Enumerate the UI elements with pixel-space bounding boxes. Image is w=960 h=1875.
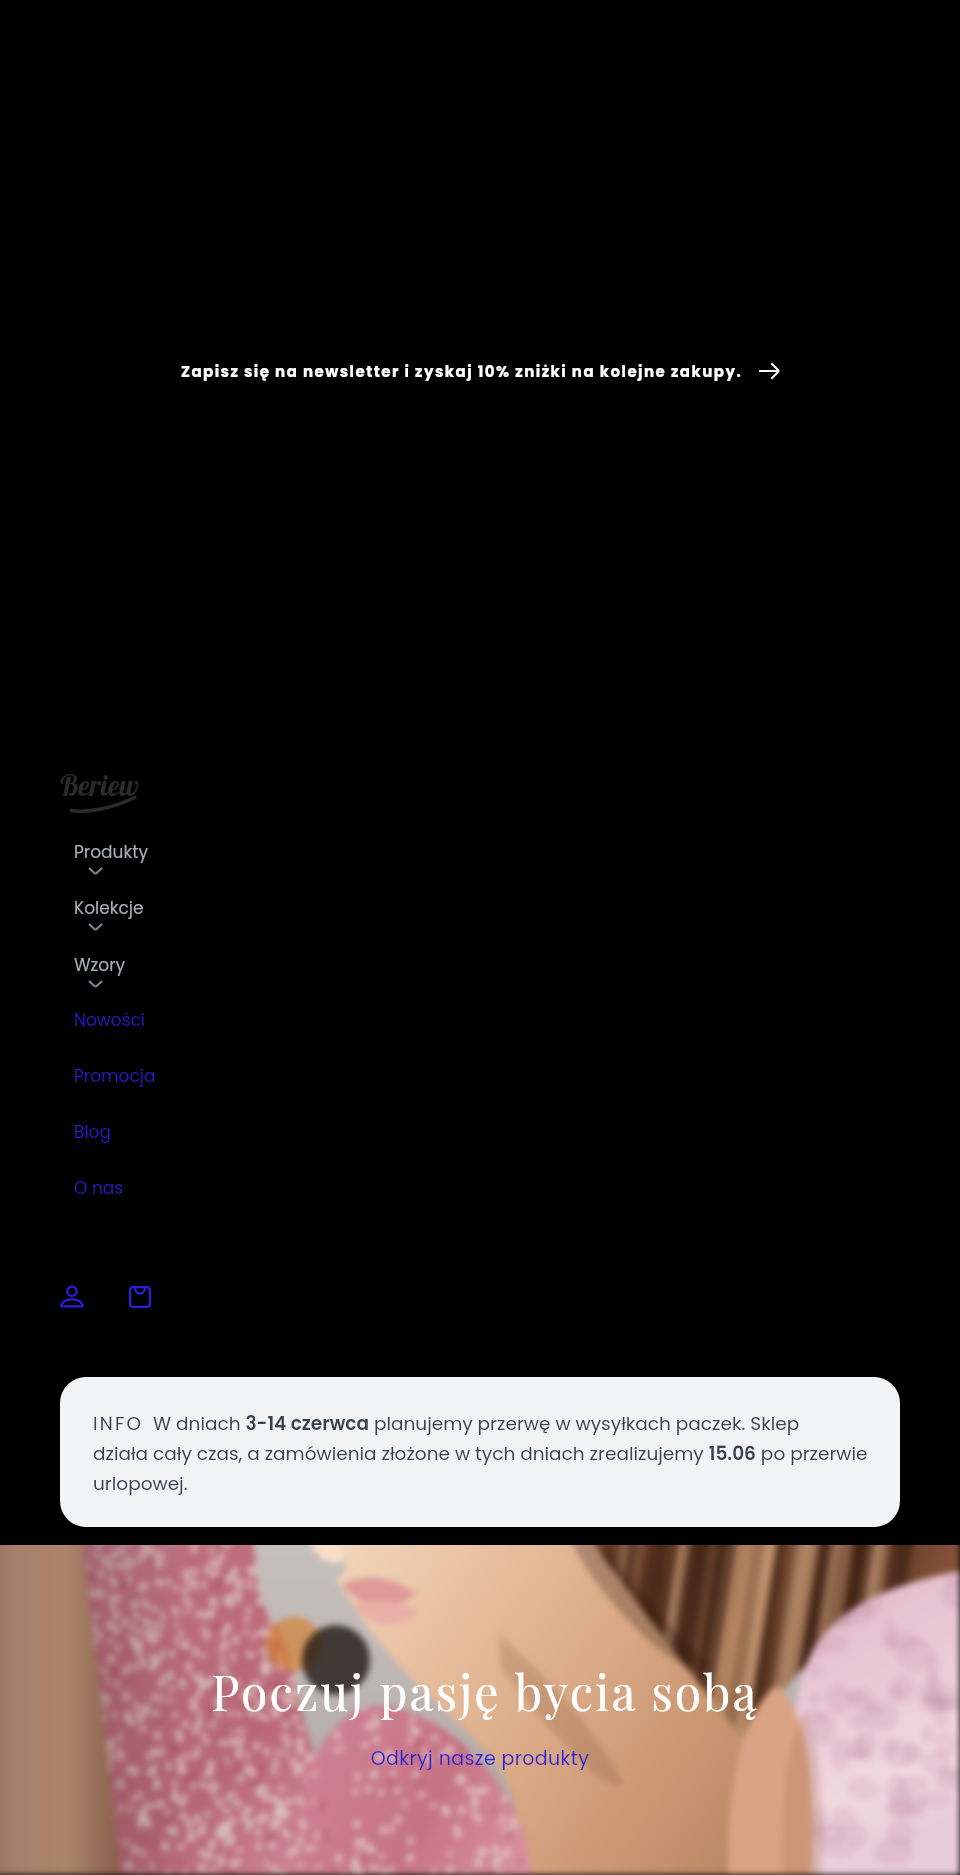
button[interactable]: Beriew xyxy=(58,767,142,815)
staticText: Odkryj nasze produkty xyxy=(360,1745,600,1772)
staticText: Produkty xyxy=(74,840,148,864)
staticText: Wzory xyxy=(74,953,126,977)
button[interactable]: Kolekcje xyxy=(74,896,144,928)
button[interactable]: Odkryj nasze produkty xyxy=(360,1745,600,1775)
button[interactable]: Nowości xyxy=(74,1008,146,1032)
staticText: INFO W dniach 3-14 czerwca planujemy prz… xyxy=(93,1411,900,1496)
button[interactable]: O nas xyxy=(74,1176,124,1200)
staticText: O nas xyxy=(74,1176,124,1200)
button[interactable]: Produkty xyxy=(74,840,148,872)
button[interactable]: Zapisz się na newsletter i zyskaj 10% zn… xyxy=(0,358,960,384)
button[interactable]: Koszyk xyxy=(127,1284,153,1310)
staticText: Zapisz się na newsletter i zyskaj 10% zn… xyxy=(181,361,743,382)
staticText: Blog xyxy=(74,1120,111,1144)
button[interactable]: Konto xyxy=(59,1284,85,1310)
staticText: Promocja xyxy=(74,1064,156,1088)
button[interactable]: Blog xyxy=(74,1120,111,1144)
staticText: Nowości xyxy=(74,1008,146,1032)
staticText: Poczuj pasję bycia sobą xyxy=(5,1659,960,1723)
button[interactable]: Promocja xyxy=(74,1064,156,1088)
button[interactable]: Wzory xyxy=(74,953,126,985)
staticText: Beriew xyxy=(60,767,139,803)
staticText: Kolekcje xyxy=(74,896,144,920)
